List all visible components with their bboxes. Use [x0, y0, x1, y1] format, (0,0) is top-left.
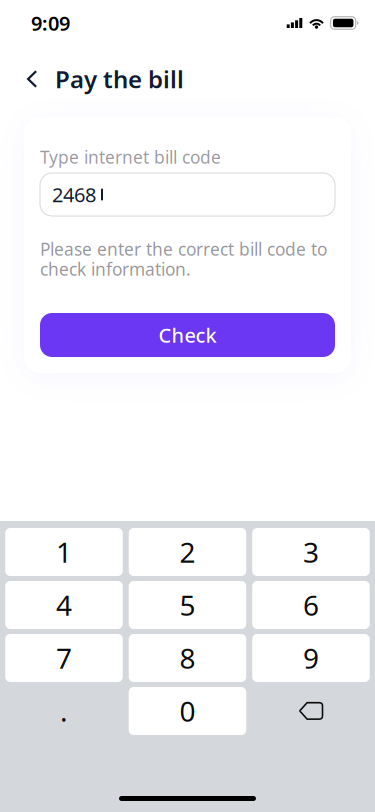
button[interactable]: 2: [129, 528, 246, 576]
button[interactable]: 0: [129, 687, 246, 735]
button[interactable]: 4: [5, 581, 123, 629]
staticText: 1: [56, 533, 72, 571]
staticText: 9: [303, 639, 319, 677]
staticText: 0: [179, 692, 195, 730]
staticText: 5: [179, 586, 195, 624]
button[interactable]: 6: [252, 581, 370, 629]
button[interactable]: 1: [5, 528, 123, 576]
staticText: Please enter the correct bill code to: [40, 237, 327, 260]
staticText: Check: [158, 322, 216, 348]
staticText: 7: [56, 639, 72, 677]
button[interactable]: Check: [40, 313, 335, 357]
staticText: 3: [303, 533, 319, 571]
staticText: check information.: [40, 257, 191, 280]
button[interactable]: Back: [17, 58, 47, 100]
button[interactable]: 5: [129, 581, 246, 629]
staticText: 8: [179, 639, 195, 677]
staticText: Pay the bill: [55, 63, 184, 95]
button[interactable]: .: [5, 687, 123, 735]
staticText: 2: [179, 533, 195, 571]
staticText: .: [60, 692, 68, 730]
staticText: 6: [303, 586, 319, 624]
button[interactable]: 8: [129, 634, 246, 682]
staticText: 9:09: [31, 10, 70, 36]
button[interactable]: 7: [5, 634, 123, 682]
button[interactable]: Delete: [252, 687, 370, 735]
staticText: 4: [56, 586, 72, 624]
staticText: Type internet bill code: [40, 145, 221, 168]
button[interactable]: 3: [252, 528, 370, 576]
button[interactable]: 9: [252, 634, 370, 682]
staticText: 2468: [52, 181, 96, 208]
